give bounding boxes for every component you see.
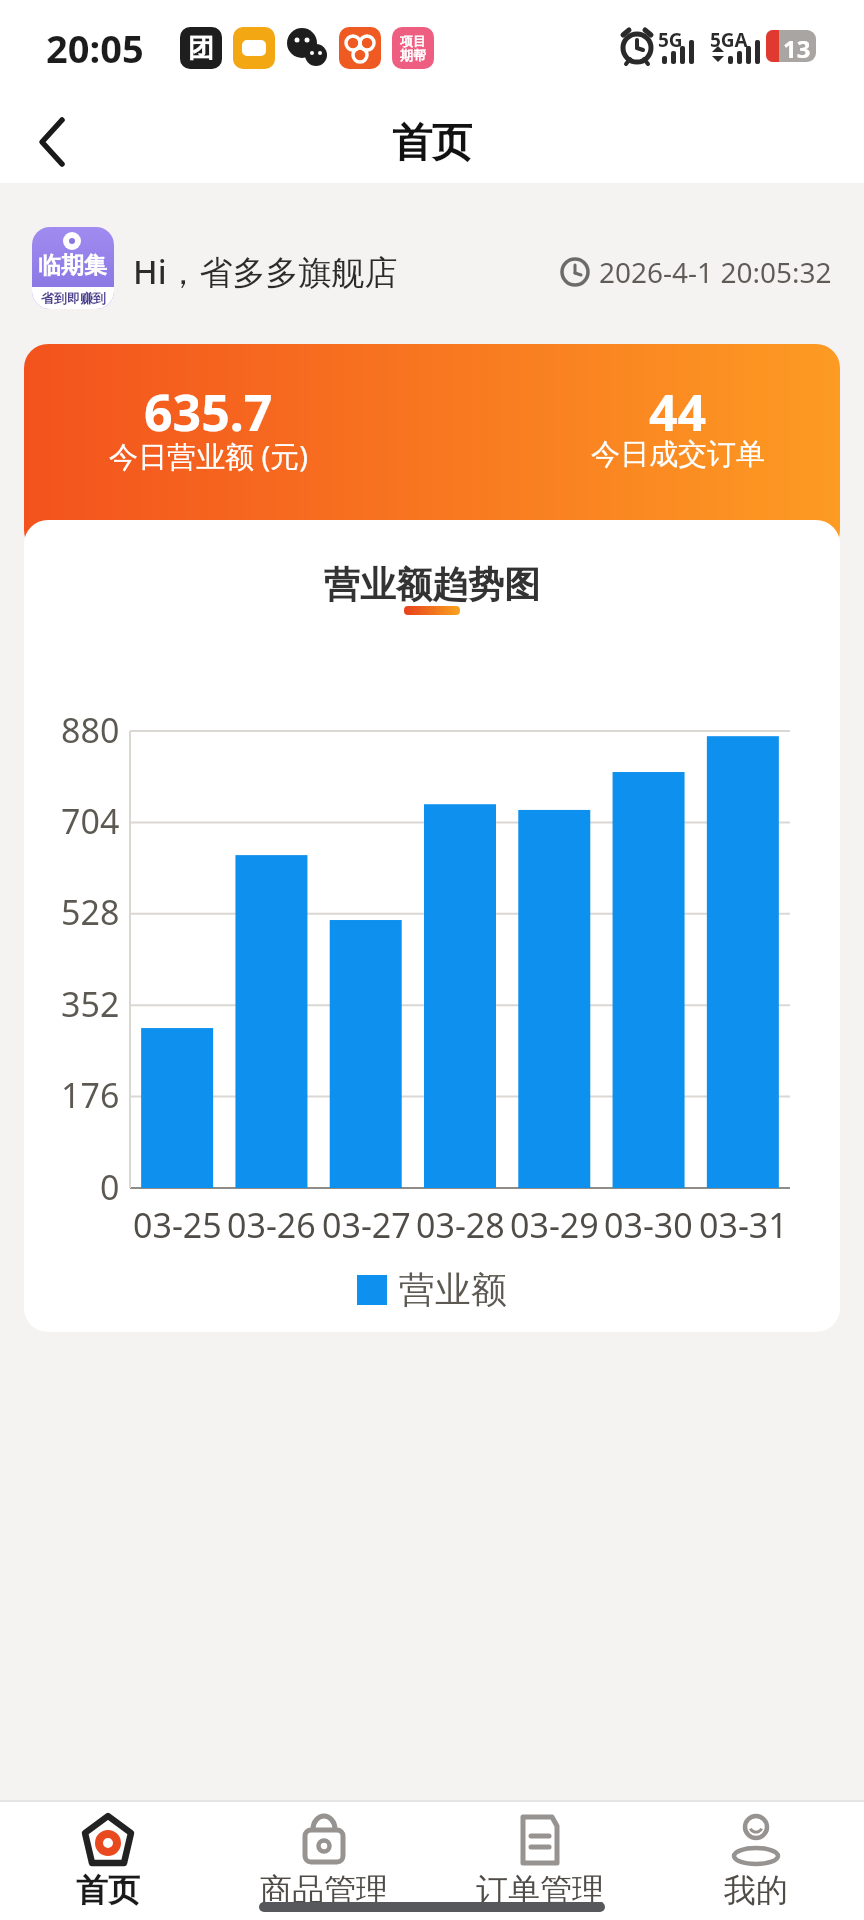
button[interactable]: 订单管理 bbox=[432, 1800, 648, 1920]
staticText: 5GA bbox=[710, 27, 748, 53]
staticText: 03-30 bbox=[604, 1202, 693, 1248]
staticText: 635.7 bbox=[144, 378, 273, 446]
staticText: 订单管理 bbox=[476, 1870, 604, 1910]
staticText: 528 bbox=[61, 889, 120, 935]
staticText: 营业额 bbox=[399, 1267, 507, 1312]
staticText: 首页 bbox=[76, 1870, 140, 1910]
staticText: 团 bbox=[188, 32, 214, 65]
staticText: 704 bbox=[61, 798, 120, 844]
staticText: 03-29 bbox=[510, 1202, 599, 1248]
button[interactable] bbox=[36, 118, 72, 166]
staticText: 03-27 bbox=[322, 1202, 411, 1248]
button[interactable]: 商品管理 bbox=[216, 1800, 432, 1920]
staticText: 176 bbox=[61, 1072, 120, 1118]
staticText: 13 bbox=[783, 32, 811, 65]
staticText: 44 bbox=[649, 378, 707, 446]
staticText: 352 bbox=[61, 981, 120, 1027]
staticText: 省到即赚到 bbox=[41, 290, 106, 306]
staticText: 营业额趋势图 bbox=[324, 562, 540, 607]
staticText: 880 bbox=[61, 707, 120, 753]
staticText: 临期集 bbox=[38, 251, 107, 280]
staticText: 项目 期帮 bbox=[400, 33, 426, 64]
button[interactable]: 我的 bbox=[648, 1800, 864, 1920]
button[interactable]: 首页 bbox=[0, 1800, 216, 1920]
staticText: 今日营业额 (元) bbox=[109, 436, 308, 476]
staticText: 今日成交订单 bbox=[591, 436, 765, 473]
staticText: 首页 bbox=[392, 117, 472, 167]
staticText: Hi，省多多旗舰店 bbox=[133, 249, 398, 294]
staticText: 03-25 bbox=[133, 1202, 222, 1248]
staticText: 我的 bbox=[724, 1870, 788, 1910]
staticText: 03-26 bbox=[227, 1202, 316, 1248]
staticText: 03-28 bbox=[416, 1202, 505, 1248]
staticText: 03-31 bbox=[699, 1202, 788, 1248]
button[interactable]: 635.7 bbox=[24, 344, 840, 554]
staticText: 商品管理 bbox=[260, 1870, 388, 1910]
staticText: 2026-4-1 20:05:32 bbox=[599, 253, 832, 291]
staticText: 0 bbox=[100, 1164, 120, 1210]
staticText: 5G bbox=[658, 27, 683, 53]
staticText: 20:05 bbox=[46, 22, 144, 74]
